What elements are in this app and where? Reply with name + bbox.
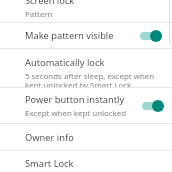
staticText: Screen lock: [25, 0, 75, 7]
staticText: Except when kept unlocked by Smart Lock: [25, 108, 135, 119]
staticText: Pattern: [25, 9, 53, 20]
button[interactable]: Power button instantly locks: [0, 88, 172, 123]
button[interactable]: Smart Lock: [0, 151, 172, 172]
button[interactable]: Owner info: [0, 124, 172, 150]
button[interactable]: Screen lock: [0, 0, 172, 22]
staticText: Owner info: [25, 131, 74, 144]
staticText: 5 seconds after sleep, except when kept …: [25, 71, 161, 87]
staticText: Smart Lock: [25, 157, 74, 170]
staticText: Automatically lock: [25, 56, 105, 69]
button[interactable]: Make pattern visible toggle: [136, 26, 164, 46]
button[interactable]: Automatically lock: [0, 49, 172, 87]
button[interactable]: Power button instantly locks toggle: [138, 96, 166, 116]
button[interactable]: Make pattern visible: [0, 23, 172, 48]
staticText: Make pattern visible: [25, 29, 114, 42]
staticText: Power button instantly locks: [25, 93, 135, 106]
